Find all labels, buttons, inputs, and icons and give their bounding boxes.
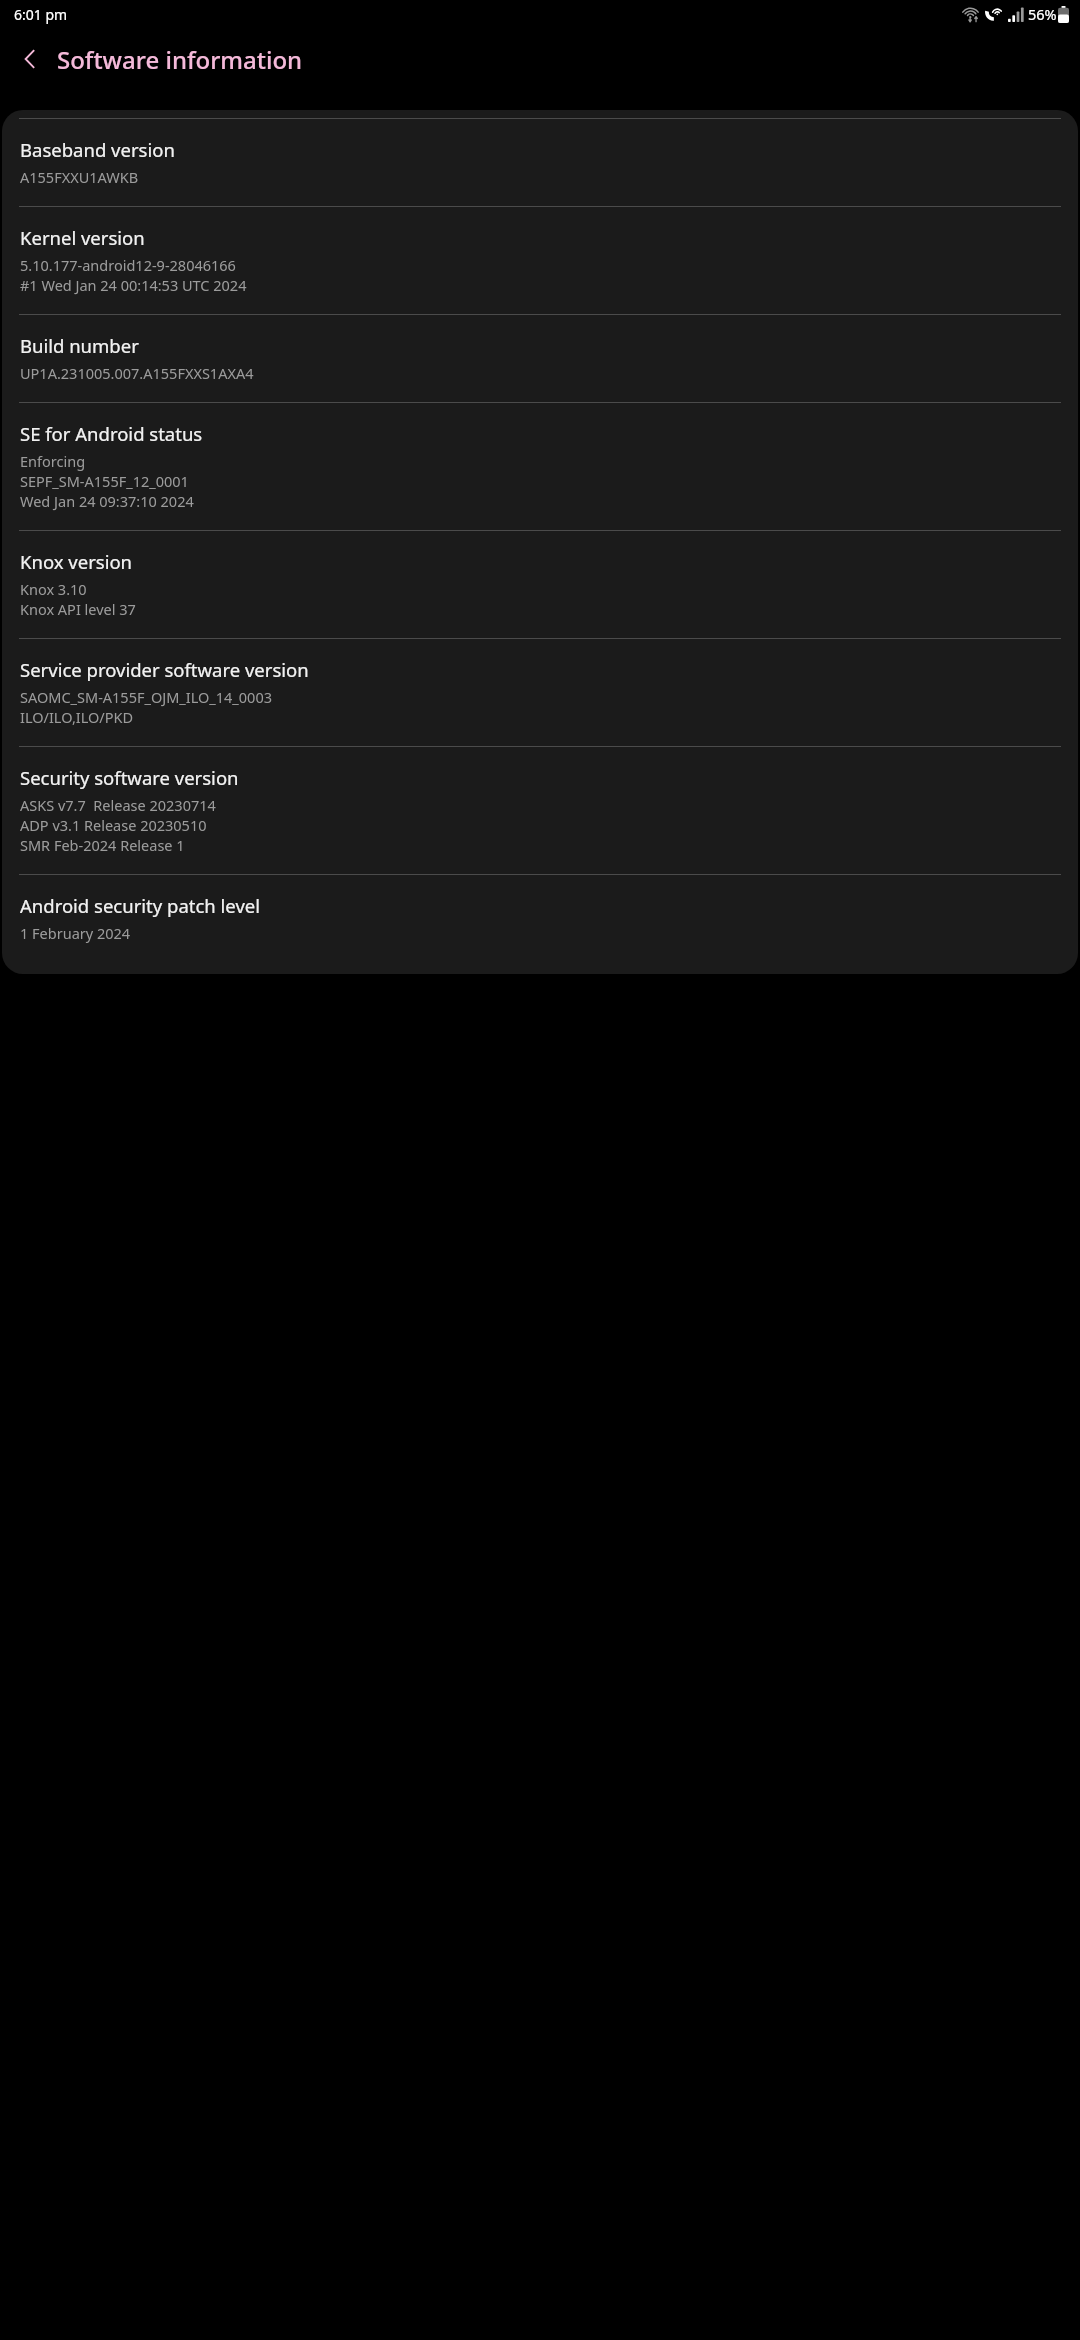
button[interactable]: Build number xyxy=(2,315,1078,402)
button[interactable]: Back xyxy=(8,37,52,81)
button[interactable]: Kernel version xyxy=(2,207,1078,314)
button[interactable]: Knox version xyxy=(2,531,1078,638)
button[interactable]: Android security patch level xyxy=(2,875,1078,962)
staticText: Kernel version xyxy=(20,225,145,250)
button[interactable]: Baseband version xyxy=(2,119,1078,206)
staticText: Android security patch level xyxy=(20,893,261,918)
staticText: Knox 3.10 xyxy=(20,579,87,599)
staticText: ASKS v7.7 Release 20230714 xyxy=(20,795,216,815)
staticText: ADP v3.1 Release 20230510 xyxy=(20,815,207,835)
staticText: 1 February 2024 xyxy=(20,923,131,943)
staticText: 6:01 pm xyxy=(14,5,68,24)
staticText: Software information xyxy=(57,43,303,76)
staticText: #1 Wed Jan 24 00:14:53 UTC 2024 xyxy=(20,275,247,295)
staticText: ILO/ILO,ILO/PKD xyxy=(20,707,134,727)
staticText: SMR Feb-2024 Release 1 xyxy=(20,835,185,855)
staticText: SAOMC_SM-A155F_OJM_ILO_14_0003 xyxy=(20,687,272,707)
staticText: UP1A.231005.007.A155FXXS1AXA4 xyxy=(20,363,254,383)
button[interactable]: Security software version xyxy=(2,747,1078,874)
staticText: Security software version xyxy=(20,765,239,790)
staticText: Knox version xyxy=(20,549,133,574)
staticText: Build number xyxy=(20,333,139,358)
staticText: Enforcing xyxy=(20,451,86,471)
staticText: Wed Jan 24 09:37:10 2024 xyxy=(20,491,194,511)
button[interactable]: SE for Android status xyxy=(2,403,1078,530)
staticText: Baseband version xyxy=(20,137,175,162)
staticText: SEPF_SM-A155F_12_0001 xyxy=(20,471,189,491)
staticText: SE for Android status xyxy=(20,421,203,446)
staticText: Service provider software version xyxy=(20,657,309,682)
button[interactable]: Service provider software version xyxy=(2,639,1078,746)
staticText: 5.10.177-android12-9-28046166 xyxy=(20,255,236,275)
staticText: Knox API level 37 xyxy=(20,599,136,619)
staticText: A155FXXU1AWKB xyxy=(20,167,139,187)
staticText: 56% xyxy=(1028,4,1057,24)
